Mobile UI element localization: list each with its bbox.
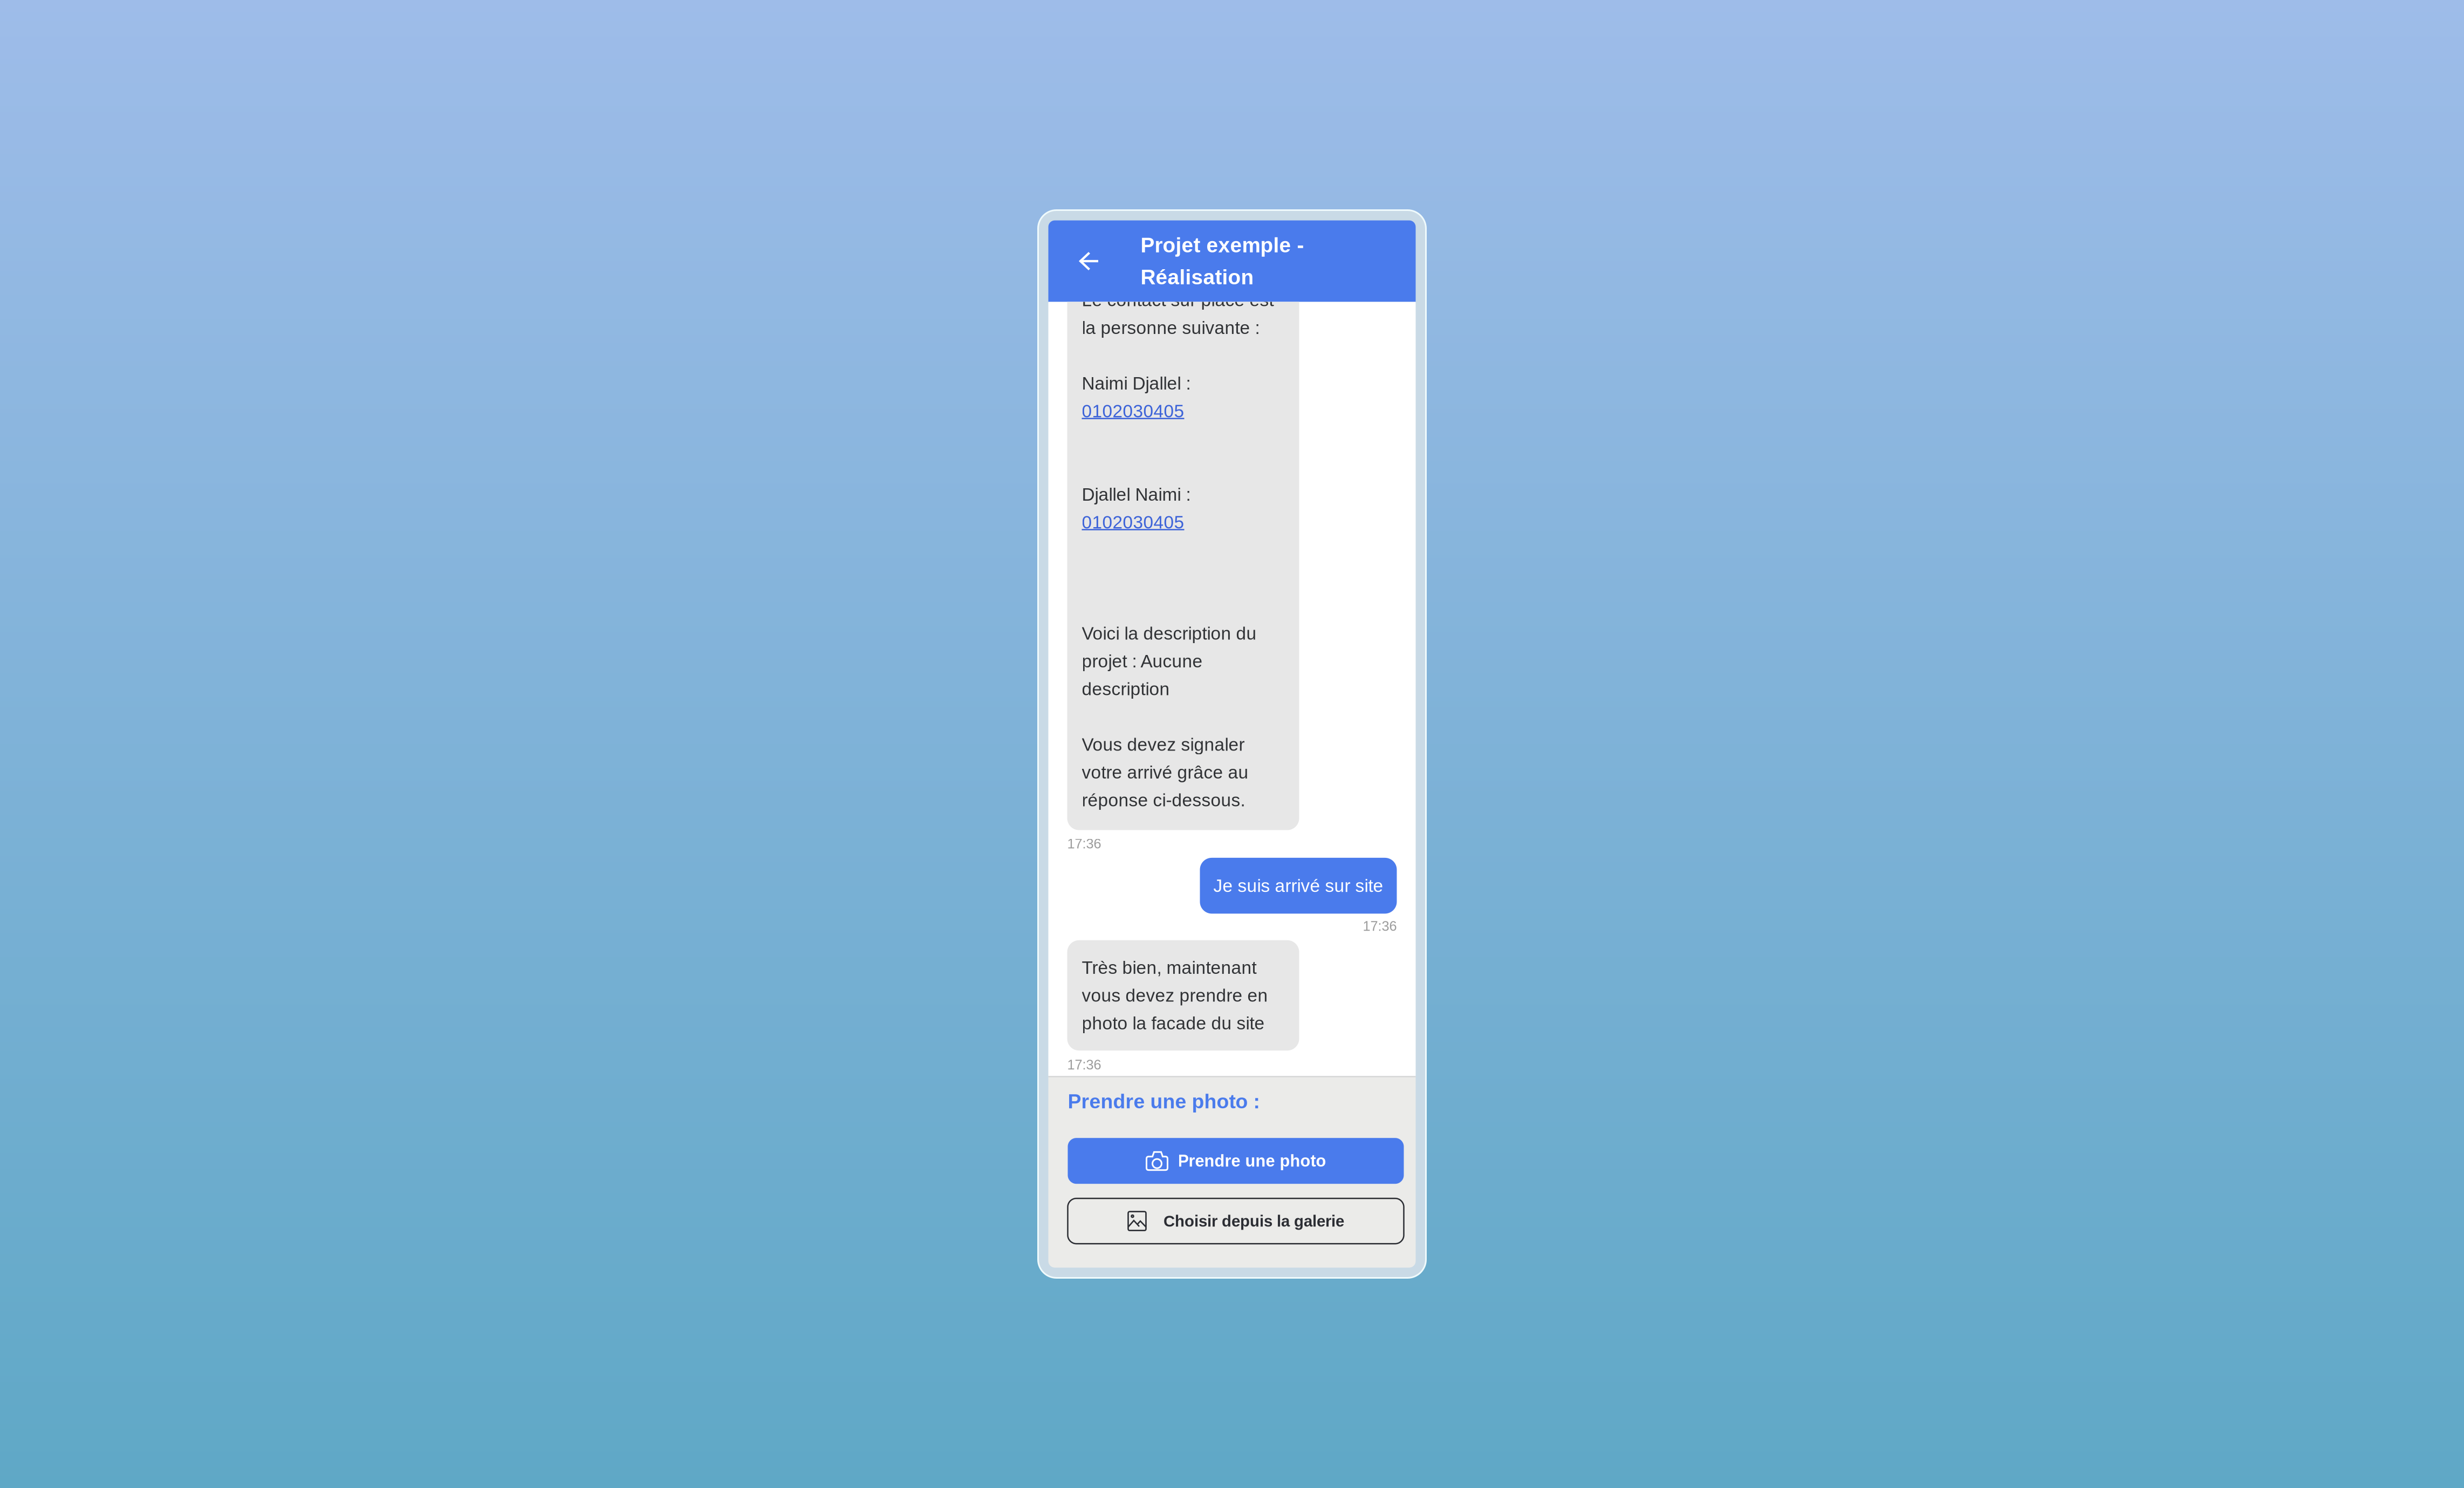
button[interactable]: Prendre une photo [1068,1138,1404,1184]
button[interactable]: 0102030405 [1082,397,1285,425]
staticText: Voici la description du [1082,623,1257,643]
staticText: description [1082,679,1170,699]
staticText: 0102030405 [1082,401,1184,421]
staticText: nouvelle mission. [1082,234,1221,254]
button[interactable]: Retour [1048,220,1130,302]
staticText: Prendre une photo [1178,1152,1326,1170]
staticText: Très bien, maintenant [1082,958,1257,978]
staticText: 17:36 [1067,836,1101,851]
staticText: 17:36 [1363,918,1397,934]
staticText: votre arrivé grâce au [1082,762,1248,782]
staticText: Je suis arrivé sur site [1213,876,1383,896]
staticText: 0102030405 [1082,512,1184,532]
staticText: Vous devez signaler [1082,734,1245,754]
staticText: Choisir depuis la galerie [1163,1212,1344,1230]
staticText: réponse ci-dessous. [1082,790,1245,810]
staticText: Djallel Naimi : [1082,484,1191,504]
staticText: photo la facade du site [1082,1013,1265,1033]
button[interactable]: Choisir depuis la galerie [1068,1198,1404,1244]
staticText: Prendre une photo : [1068,1090,1260,1113]
staticText: Le contact sur place est [1082,290,1274,310]
staticText: 17:36 [1067,1057,1101,1072]
staticText: projet : Aucune [1082,651,1203,671]
button[interactable]: 0102030405 [1082,508,1285,536]
staticText: le point de démarrer une [1082,206,1280,227]
staticText: Naimi Djallel : [1082,373,1191,393]
staticText: vous devez prendre en [1082,985,1268,1005]
staticText: la personne suivante : [1082,318,1260,338]
staticText: Projet exemple - Réalisation [1141,234,1304,289]
